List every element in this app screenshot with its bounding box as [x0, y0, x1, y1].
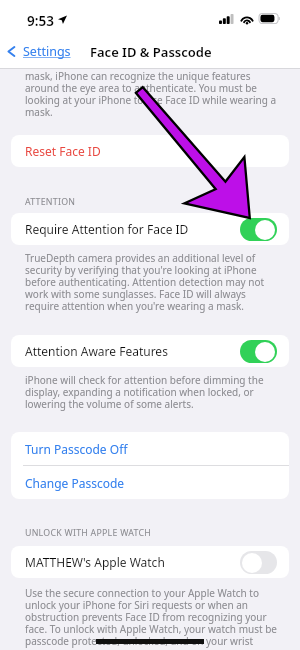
staticText: Attention Aware Features — [25, 343, 168, 359]
staticText: mask, iPhone can recognize the unique fe… — [25, 69, 278, 119]
button[interactable]: Toggle — [240, 340, 277, 363]
staticText: 9:53 — [27, 12, 54, 30]
other: Back — [7, 44, 16, 59]
button[interactable]: Back — [7, 43, 71, 60]
button[interactable]: Change Passcode — [11, 466, 289, 499]
staticText: Require Attention for Face ID — [25, 221, 189, 237]
staticText: TrueDepth camera provides an additional … — [25, 251, 278, 313]
staticText: UNLOCK WITH APPLE WATCH — [25, 527, 152, 539]
staticText: Reset Face ID — [25, 143, 101, 159]
staticText: Face ID & Passcode — [90, 43, 212, 61]
button[interactable]: Toggle — [240, 218, 277, 241]
button[interactable]: MATTHEW's Apple Watch — [11, 546, 289, 578]
button[interactable]: Attention Aware Features — [11, 335, 289, 367]
button[interactable]: Require Attention for Face ID — [11, 213, 289, 245]
staticText: Turn Passcode Off — [25, 441, 128, 457]
staticText: ATTENTION — [25, 196, 76, 208]
staticText: Change Passcode — [25, 475, 125, 491]
staticText: iPhone will check for attention before d… — [25, 373, 278, 411]
button[interactable]: Toggle — [240, 551, 277, 574]
staticText: MATTHEW's Apple Watch — [25, 554, 165, 570]
button[interactable]: Turn Passcode Off — [11, 432, 289, 465]
staticText: Settings — [23, 43, 71, 60]
button[interactable]: Reset Face ID — [11, 135, 289, 167]
staticText: Use the secure connection to your Apple … — [25, 586, 278, 648]
